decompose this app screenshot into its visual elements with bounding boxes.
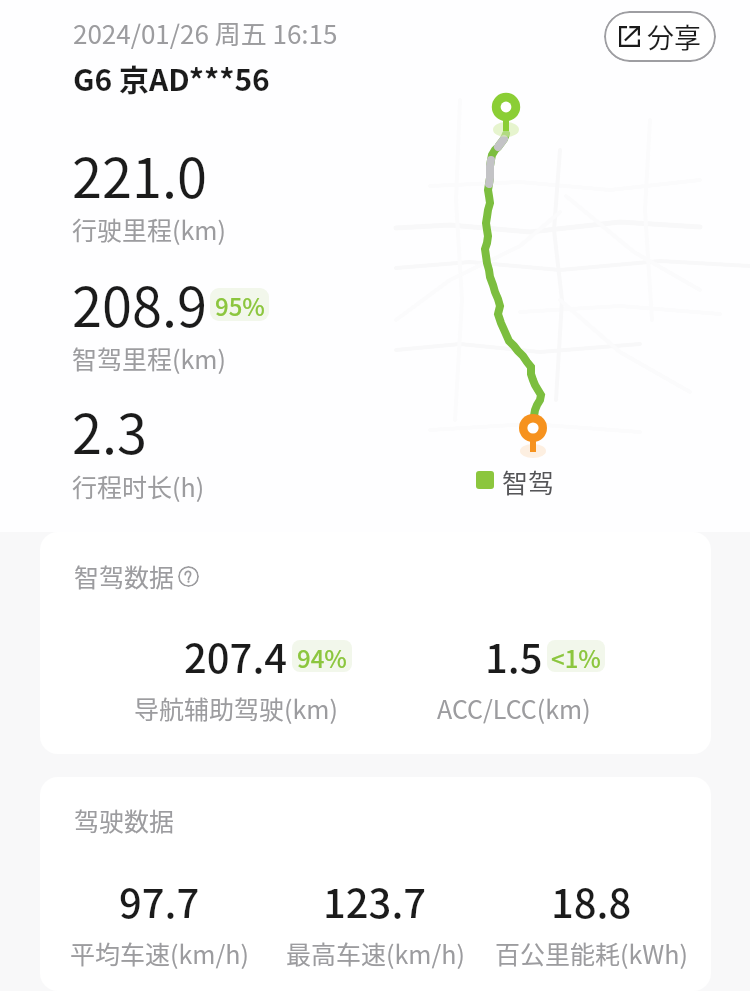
staticText: 97.7 [119,872,200,930]
staticText: ACC/LCC(km) [437,690,591,726]
staticText: 百公里能耗(kWh) [495,935,688,971]
staticText: 驾驶数据 [74,802,175,838]
staticText: 平均车速(km/h) [70,935,249,971]
staticText: 2024/01/26 周五 16:15 [73,14,338,52]
staticText: 94% [297,640,347,672]
staticText: 123.7 [323,872,427,930]
staticText: 18.8 [551,872,632,930]
button[interactable]: 智驾数据 [74,558,199,594]
staticText: 2.3 [72,391,147,469]
other: 智驾数据说明 [178,566,199,587]
staticText: G6 京AD***56 [73,56,270,99]
staticText: 智驾数据 [74,558,175,594]
staticText: 207.4 [184,627,288,685]
staticText: 1.5 [485,627,543,685]
staticText: 221.0 [72,135,207,213]
staticText: 导航辅助驾驶(km) [134,690,338,726]
staticText: 分享 [647,17,701,56]
button[interactable]: 分享 [604,11,716,62]
staticText: 智驾里程(km) [72,340,226,376]
staticText: 208.9 [72,264,207,342]
staticText: <1% [551,640,601,672]
staticText: 最高车速(km/h) [286,935,465,971]
staticText: 智驾 [502,463,555,501]
staticText: 行驶里程(km) [72,211,226,247]
staticText: 行程时长(h) [72,468,205,504]
staticText: 95% [215,288,265,321]
